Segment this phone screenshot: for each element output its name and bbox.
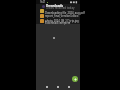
- button[interactable]: [36, 14, 80, 19]
- button[interactable]: [36, 19, 80, 25]
- button[interactable]: Add: [72, 76, 78, 82]
- staticText: Download complete: [45, 21, 71, 25]
- staticText: photo_2024_08_17_trip.jpg: [45, 19, 79, 23]
- staticText: report_final_version3.docx: [45, 14, 79, 18]
- staticText: 9:41: [40, 0, 46, 4]
- button[interactable]: Downloads: [36, 4, 80, 9]
- staticText: Downloading file_2024_aug.pdf: [45, 11, 85, 15]
- staticText: 3 files received today: [46, 6, 75, 10]
- button[interactable]: [36, 9, 80, 14]
- staticText: Downloads: [46, 4, 64, 8]
